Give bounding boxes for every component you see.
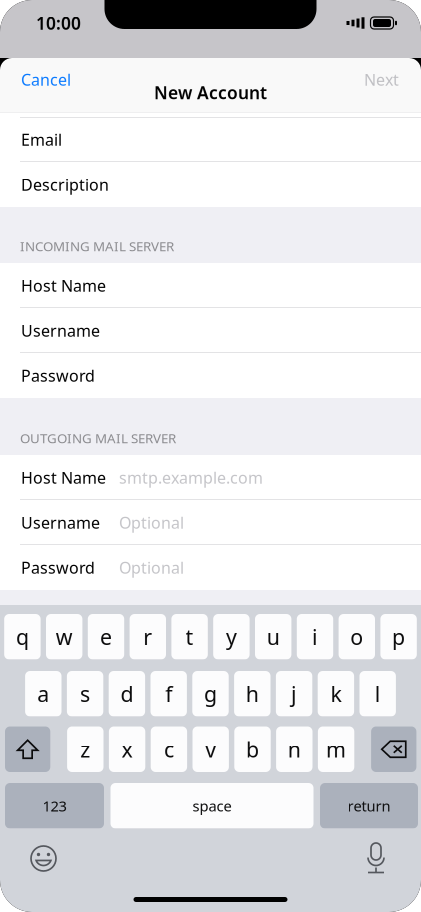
staticText: Description [21, 174, 109, 195]
staticText: k [330, 680, 341, 708]
button[interactable]: Delete [371, 726, 416, 772]
staticText: Password [21, 557, 95, 578]
staticText: b [246, 735, 259, 763]
button[interactable]: Cancel [17, 61, 75, 98]
staticText: i [312, 623, 318, 651]
staticText: q [16, 623, 29, 651]
staticText: n [288, 735, 301, 763]
staticText: g [204, 680, 217, 708]
staticText: x [122, 735, 133, 763]
button[interactable]: y [213, 614, 250, 659]
staticText: w [56, 623, 73, 651]
button[interactable]: return [320, 783, 418, 828]
button[interactable]: g [192, 671, 229, 716]
staticText: y [226, 623, 237, 651]
button[interactable]: p [380, 614, 417, 659]
button[interactable]: k [318, 671, 354, 716]
staticText: a [37, 680, 49, 708]
button[interactable]: c [151, 726, 187, 772]
button[interactable]: v [192, 726, 229, 772]
button[interactable]: q [4, 614, 41, 659]
button[interactable]: h [234, 671, 270, 716]
staticText: return [347, 796, 390, 815]
button[interactable]: o [339, 614, 375, 659]
button[interactable]: j [276, 671, 312, 716]
button[interactable]: s [67, 671, 103, 716]
staticText: 10:00 [36, 11, 81, 34]
staticText: Username [21, 320, 100, 341]
staticText: New Account [154, 81, 267, 104]
staticText: Cancel [21, 69, 71, 90]
button[interactable]: x [109, 726, 145, 772]
staticText: f [165, 680, 172, 708]
staticText: e [100, 623, 112, 651]
button[interactable]: Shift [5, 726, 50, 772]
button[interactable]: Password [0, 545, 421, 590]
button[interactable]: e [88, 614, 124, 659]
staticText: Host Name [21, 275, 106, 296]
staticText: t [186, 623, 194, 651]
button[interactable]: Host Name [0, 263, 421, 308]
button[interactable]: u [255, 614, 291, 659]
staticText: Next [364, 69, 399, 90]
staticText: INCOMING MAIL SERVER [20, 237, 174, 255]
staticText: c [164, 735, 174, 763]
staticText: l [375, 680, 381, 708]
button[interactable]: Username [0, 308, 421, 353]
button[interactable]: Password [0, 353, 421, 398]
staticText: 123 [42, 796, 66, 815]
button[interactable]: Next [360, 61, 403, 98]
button[interactable]: w [46, 614, 82, 659]
button[interactable]: f [150, 671, 187, 716]
button[interactable]: a [25, 671, 61, 716]
staticText: Optional [119, 557, 184, 578]
button[interactable]: l [359, 671, 396, 716]
button[interactable]: n [276, 726, 312, 772]
staticText: smtp.example.com [119, 467, 263, 488]
button[interactable]: Emoji [30, 845, 57, 872]
staticText: z [80, 735, 90, 763]
staticText: space [192, 796, 231, 815]
staticText: d [120, 680, 133, 708]
staticText: o [350, 623, 363, 651]
staticText: OUTGOING MAIL SERVER [20, 429, 176, 447]
staticText: v [205, 735, 216, 763]
staticText: p [392, 623, 405, 651]
button[interactable]: b [234, 726, 271, 772]
button[interactable]: d [109, 671, 145, 716]
staticText: Password [21, 365, 95, 386]
staticText: j [291, 680, 297, 708]
button[interactable]: Dictation [363, 841, 389, 875]
staticText: m [326, 735, 346, 763]
staticText: r [143, 623, 152, 651]
button[interactable]: space [110, 783, 313, 828]
button[interactable]: z [67, 726, 103, 772]
staticText: Email [21, 129, 62, 150]
button[interactable]: 123 [5, 783, 104, 828]
button[interactable]: t [171, 614, 208, 659]
staticText: Host Name [21, 467, 106, 488]
staticText: s [80, 680, 90, 708]
staticText: Optional [119, 512, 184, 533]
staticText: Username [21, 512, 100, 533]
button[interactable]: Description [0, 162, 421, 207]
button[interactable]: Email [0, 117, 421, 162]
button[interactable]: m [318, 726, 354, 772]
button[interactable]: r [130, 614, 166, 659]
staticText: u [267, 623, 280, 651]
button[interactable]: i [297, 614, 333, 659]
button[interactable]: Username [0, 500, 421, 545]
button[interactable]: Host Name [0, 455, 421, 500]
staticText: h [246, 680, 259, 708]
